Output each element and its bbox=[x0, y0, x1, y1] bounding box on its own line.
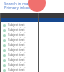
staticText: preview body bbox=[8, 52, 27, 53]
staticText: preview body bbox=[8, 57, 27, 58]
staticText: Subject text bbox=[8, 53, 25, 57]
staticText: Subject text bbox=[8, 38, 25, 42]
staticText: Subject text bbox=[8, 58, 25, 62]
staticText: Search in mail bbox=[4, 1, 31, 6]
staticText: Subject text bbox=[8, 48, 25, 52]
staticText: Subject text bbox=[8, 33, 25, 37]
staticText: Subject text bbox=[8, 68, 25, 72]
staticText: preview body bbox=[8, 62, 27, 63]
staticText: preview body bbox=[8, 47, 27, 48]
staticText: preview body bbox=[8, 32, 27, 33]
staticText: preview body bbox=[8, 67, 27, 68]
staticText: preview body bbox=[8, 27, 27, 28]
staticText: Subject text bbox=[8, 43, 25, 47]
staticText: Subject text bbox=[8, 63, 25, 67]
staticText: Primary inbox bbox=[4, 5, 31, 10]
staticText: preview body bbox=[8, 37, 27, 38]
staticText: preview body bbox=[8, 42, 27, 43]
staticText: Subject text bbox=[8, 28, 25, 32]
staticText: Subject text bbox=[8, 23, 25, 27]
